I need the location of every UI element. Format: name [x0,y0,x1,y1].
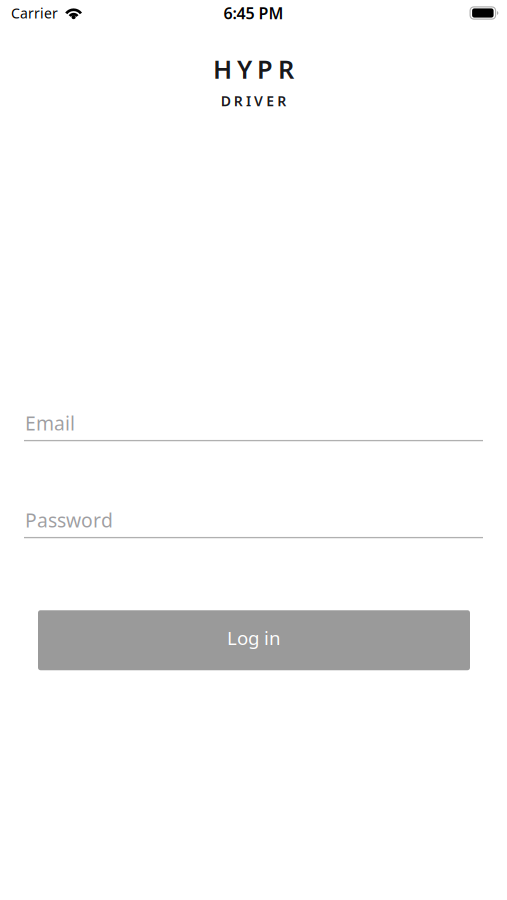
staticText: D [221,92,231,110]
staticText: H [213,52,232,86]
staticText: R [277,92,286,110]
staticText: 6:45 PM [223,2,283,24]
staticText: R [234,92,243,110]
button[interactable]: Log in [38,610,470,670]
staticText: Log in [227,625,281,650]
staticText: Carrier [11,4,58,22]
staticText: Email [25,410,75,436]
staticText: I [246,92,251,110]
staticText: Password [25,507,113,533]
staticText: Y [237,52,252,86]
staticText: P [257,52,273,86]
staticText: E [266,92,274,110]
staticText: V [254,92,263,110]
button[interactable]: Password [24,507,483,538]
staticText: R [278,52,294,86]
button[interactable]: Email [24,410,483,441]
